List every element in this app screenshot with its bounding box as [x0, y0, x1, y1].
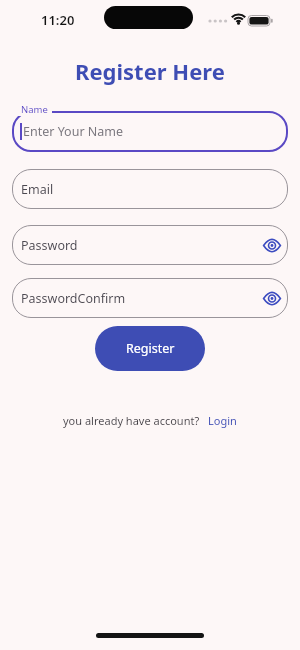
button[interactable]: Password: [12, 225, 288, 265]
staticText: Register: [126, 340, 175, 357]
staticText: Name: [21, 103, 48, 116]
staticText: Login: [208, 413, 237, 428]
button[interactable]: Email: [12, 169, 288, 209]
staticText: Enter Your Name: [23, 123, 124, 140]
staticText: Register Here: [75, 56, 225, 86]
staticText: Email: [21, 181, 54, 198]
staticText: Password: [21, 237, 78, 254]
button[interactable]: PasswordConfirm: [12, 278, 288, 318]
button[interactable]: Enter Your Name: [12, 111, 288, 152]
button[interactable]: Register: [95, 326, 205, 371]
button[interactable]: [259, 285, 285, 311]
staticText: 11:20: [41, 11, 75, 29]
staticText: you already have account?: [63, 413, 200, 428]
staticText: PasswordConfirm: [21, 290, 126, 307]
button[interactable]: Login: [208, 413, 237, 428]
button[interactable]: [259, 232, 285, 258]
